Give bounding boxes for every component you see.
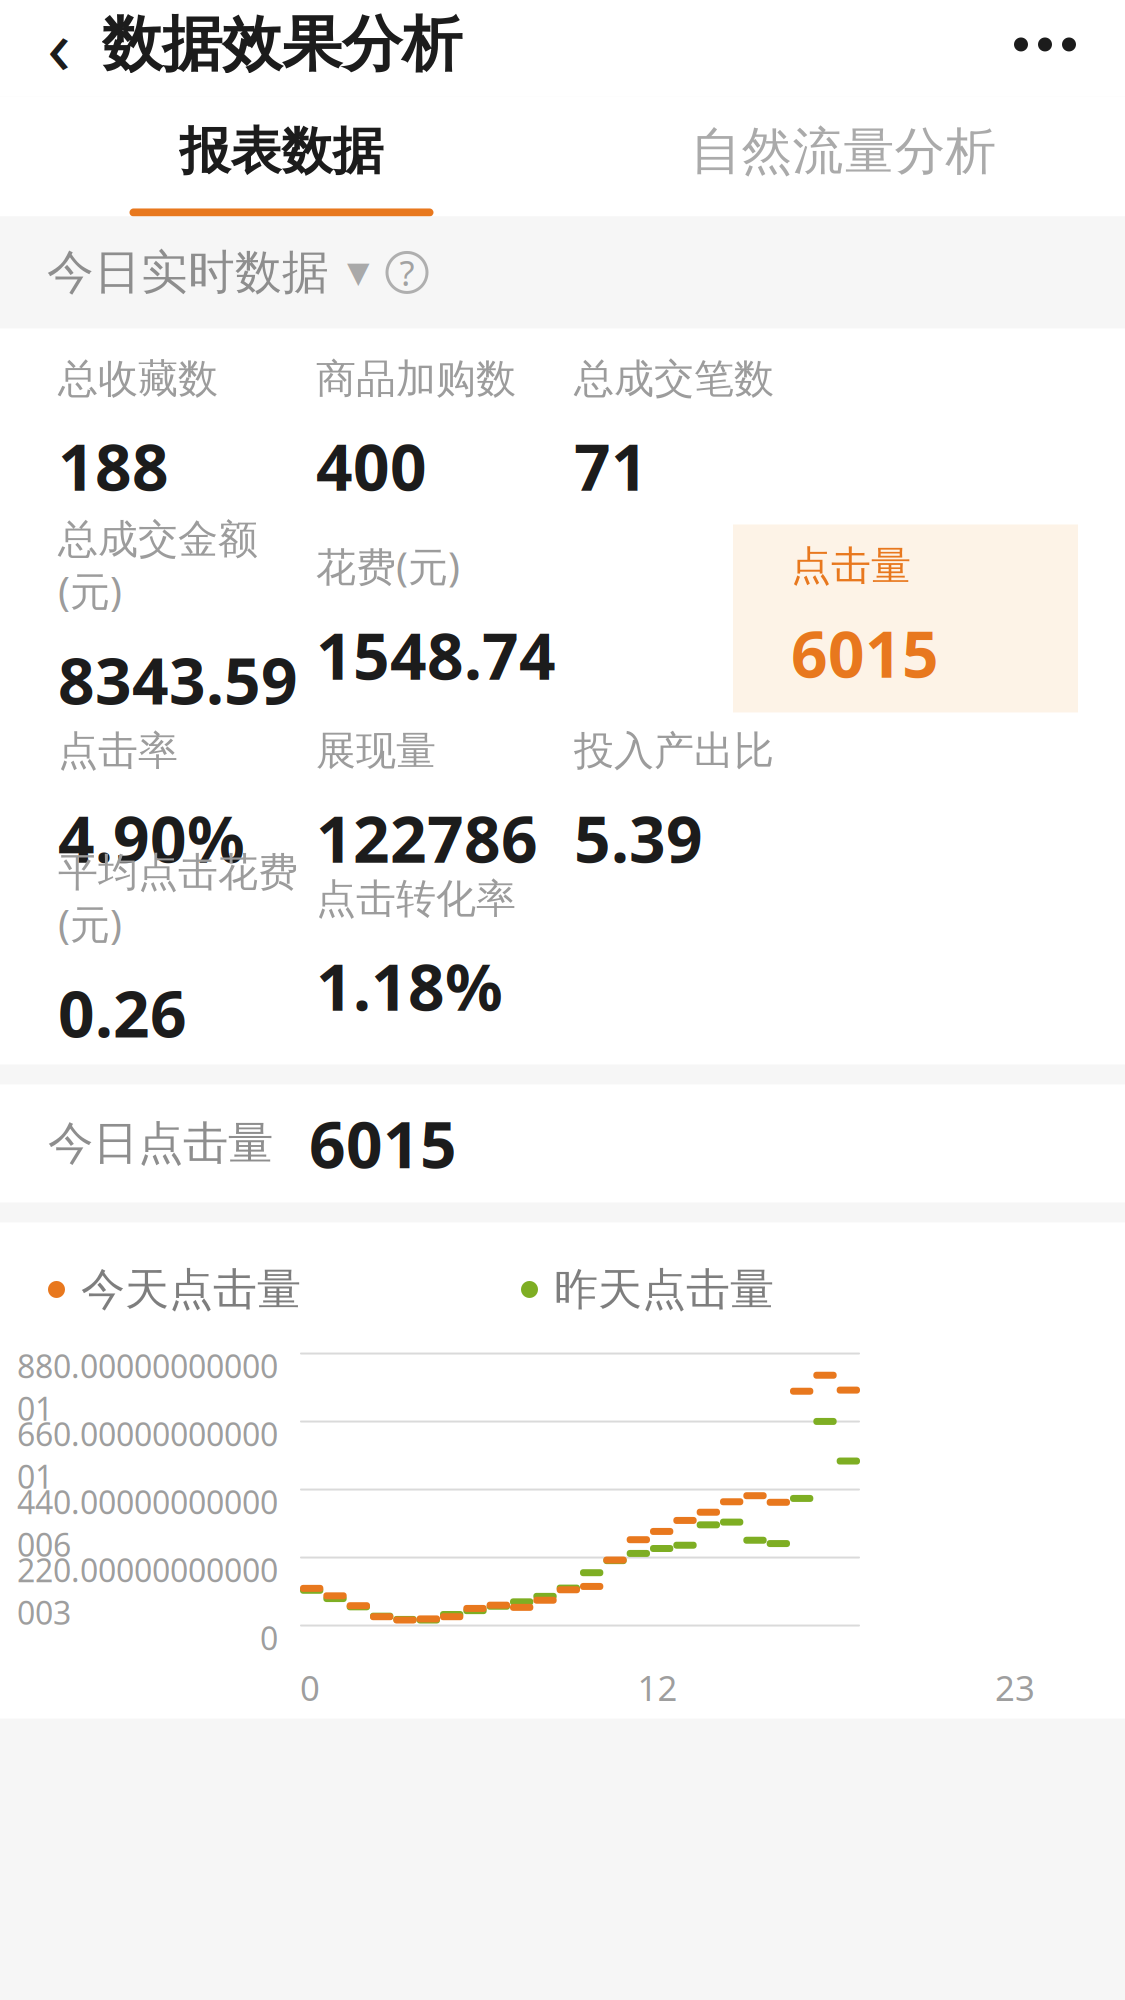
button[interactable]: More options [985, 0, 1105, 94]
staticText: ? [399, 249, 414, 295]
staticText: 1.18% [316, 943, 503, 1028]
staticText: 880.0000000000001 [17, 1344, 278, 1429]
staticText: 展现量 [316, 726, 436, 775]
button[interactable]: 点击量 [733, 524, 1078, 712]
staticText: 220.00000000000003 [17, 1548, 278, 1633]
staticText: 总成交金额(元) [58, 515, 258, 617]
staticText: 6015 [309, 1101, 457, 1186]
staticText: 0 [300, 1664, 320, 1710]
staticText: 投入产出比 [574, 726, 774, 775]
staticText: 点击率 [58, 726, 178, 775]
staticText: 今天点击量 [81, 1262, 301, 1316]
button[interactable]: 商品加购数 [316, 374, 574, 488]
staticText: ‹ [47, 0, 71, 96]
staticText: 5.39 [574, 795, 703, 880]
button[interactable]: 平均点击花费(元) [58, 894, 316, 1008]
staticText: 6015 [791, 610, 939, 695]
button[interactable]: 投入产出比 [574, 746, 832, 860]
staticText: 23 [995, 1664, 1035, 1710]
button[interactable]: 总成交金额(元) [58, 561, 316, 675]
staticText: 71 [574, 423, 648, 508]
staticText: 报表数据 [179, 120, 383, 182]
staticText: 440.00000000000006 [17, 1480, 278, 1565]
staticText: 122786 [316, 795, 538, 880]
staticText: 自然流量分析 [690, 120, 996, 182]
staticText: 188 [58, 423, 169, 508]
button[interactable]: 花费(元) [316, 561, 574, 675]
button[interactable]: 今日实时数据 [47, 224, 370, 321]
staticText: 商品加购数 [316, 354, 516, 403]
staticText: 数据效果分析 [102, 8, 462, 81]
staticText: 花费(元) [316, 539, 460, 592]
button[interactable]: 报表数据 [0, 96, 562, 216]
staticText: ▼ [347, 256, 370, 289]
button[interactable]: 展现量 [316, 746, 574, 860]
staticText: 400 [316, 423, 427, 508]
staticText: 总收藏数 [58, 354, 218, 403]
staticText: 8343.59 [58, 637, 298, 722]
button[interactable]: 点击转化率 [316, 894, 574, 1008]
button[interactable]: Back [20, 0, 98, 94]
staticText: 昨天点击量 [554, 1262, 774, 1316]
staticText: 0 [260, 1616, 278, 1659]
staticText: 平均点击花费(元) [58, 848, 298, 950]
staticText: 0.26 [58, 970, 187, 1055]
button[interactable]: 总收藏数 [58, 374, 316, 488]
button[interactable]: 自然流量分析 [562, 96, 1124, 216]
staticText: 660.0000000000001 [17, 1412, 278, 1497]
button[interactable]: Help [370, 235, 444, 309]
staticText: 点击转化率 [316, 874, 516, 923]
staticText: 点击量 [791, 541, 911, 590]
button[interactable]: 点击率 [58, 746, 316, 860]
staticText: 今日实时数据 [47, 244, 329, 301]
staticText: 12 [637, 1664, 677, 1710]
staticText: 1548.74 [316, 612, 556, 697]
button[interactable]: 总成交笔数 [574, 374, 832, 488]
staticText: 今日点击量 [48, 1116, 273, 1171]
staticText: 4.90% [58, 795, 245, 880]
staticText: 总成交笔数 [574, 354, 774, 403]
